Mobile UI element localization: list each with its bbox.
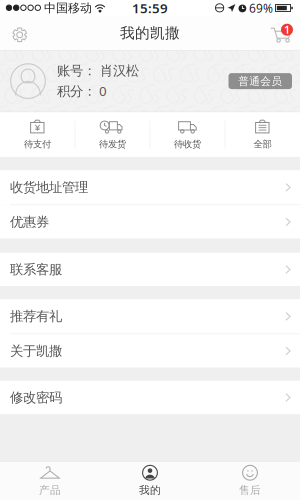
button[interactable]: 待收货	[150, 112, 225, 157]
button[interactable]: 推荐有礼	[0, 299, 300, 334]
staticText: 修改密码	[10, 389, 62, 406]
staticText: 普通会员	[238, 74, 282, 88]
button[interactable]: 待支付	[0, 112, 75, 157]
staticText: 15:59	[132, 0, 168, 17]
staticText: 待收货	[174, 138, 201, 150]
staticText: 待发货	[99, 138, 126, 150]
staticText: 69%	[249, 0, 273, 16]
button[interactable]: 修改密码	[0, 381, 300, 414]
button[interactable]: 优惠券	[0, 205, 300, 239]
staticText: 我的	[139, 484, 161, 497]
button[interactable]: 全部	[225, 112, 300, 157]
staticText: 账号： 肖汉松	[57, 63, 139, 79]
staticText: 积分： 0	[57, 82, 107, 100]
button[interactable]: 售后	[200, 461, 300, 500]
staticText: 联系客服	[10, 261, 62, 278]
button[interactable]: 普通会员	[228, 73, 292, 89]
staticText: 全部	[253, 138, 271, 150]
staticText: 产品	[39, 484, 61, 497]
staticText: 中国移动	[44, 1, 92, 15]
button[interactable]: 联系客服	[0, 253, 300, 286]
staticText: 待支付	[24, 138, 51, 150]
staticText: 优惠券	[10, 214, 49, 230]
button[interactable]: 我的	[100, 461, 200, 500]
staticText: 推荐有礼	[10, 308, 62, 325]
button[interactable]: Shopping cart, 1 item	[255, 16, 295, 50]
staticText: 1	[284, 23, 290, 37]
button[interactable]: 收货地址管理	[0, 170, 300, 205]
staticText: 收货地址管理	[10, 179, 88, 196]
staticText: 关于凯撒	[10, 343, 62, 359]
button[interactable]: 待发货	[75, 112, 150, 157]
button[interactable]: Settings	[5, 16, 45, 50]
staticText: 我的凯撒	[120, 24, 180, 42]
staticText: 售后	[239, 484, 261, 497]
button[interactable]: 关于凯撒	[0, 334, 300, 368]
button[interactable]: 产品	[0, 461, 100, 500]
